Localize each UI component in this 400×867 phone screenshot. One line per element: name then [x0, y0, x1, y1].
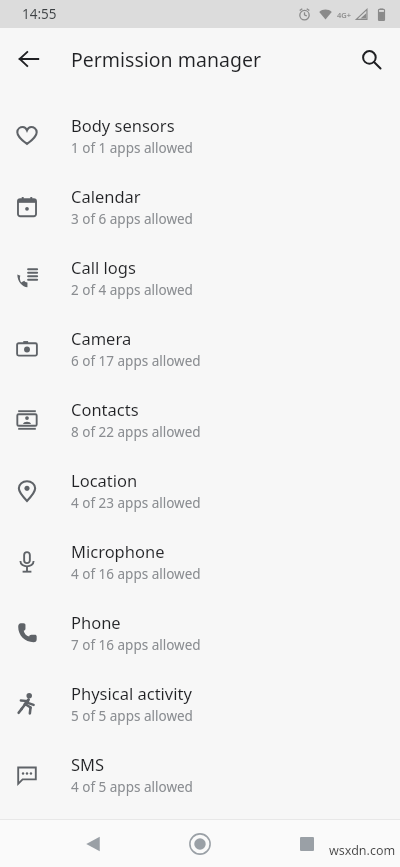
- staticText: Microphone: [71, 540, 165, 562]
- button[interactable]: Body sensors: [0, 100, 400, 171]
- staticText: 6 of 17 apps allowed: [71, 352, 201, 370]
- staticText: Call logs: [71, 256, 136, 278]
- staticText: Location: [71, 469, 138, 491]
- button[interactable]: Call logs: [0, 242, 400, 313]
- staticText: SMS: [71, 753, 105, 775]
- button[interactable]: Contacts: [0, 384, 400, 455]
- staticText: Physical activity: [71, 682, 192, 704]
- staticText: 1 of 1 apps allowed: [71, 139, 193, 157]
- button[interactable]: Physical activity: [0, 668, 400, 739]
- staticText: 4 of 16 apps allowed: [71, 565, 201, 583]
- button[interactable]: Calendar: [0, 171, 400, 242]
- staticText: Contacts: [71, 398, 139, 420]
- staticText: wsxdn.com: [329, 842, 396, 859]
- staticText: Body sensors: [71, 114, 175, 136]
- staticText: 4 of 5 apps allowed: [71, 778, 193, 796]
- staticText: 4G+: [337, 10, 352, 20]
- staticText: 4 of 23 apps allowed: [71, 494, 201, 512]
- button[interactable]: SMS: [0, 739, 400, 810]
- button[interactable]: Back: [9, 39, 49, 79]
- button[interactable]: Search: [349, 37, 393, 81]
- button[interactable]: Phone: [0, 597, 400, 668]
- button[interactable]: Camera: [0, 313, 400, 384]
- button[interactable]: Back: [73, 824, 113, 864]
- staticText: 3 of 6 apps allowed: [71, 210, 193, 228]
- staticText: Phone: [71, 611, 121, 633]
- staticText: 8 of 22 apps allowed: [71, 423, 201, 441]
- button[interactable]: Home: [180, 824, 220, 864]
- button[interactable]: Location: [0, 455, 400, 526]
- staticText: 5 of 5 apps allowed: [71, 707, 193, 725]
- staticText: Camera: [71, 327, 132, 349]
- staticText: Calendar: [71, 185, 141, 207]
- staticText: 14:55: [22, 5, 57, 23]
- staticText: Permission manager: [71, 46, 261, 73]
- staticText: 2 of 4 apps allowed: [71, 281, 193, 299]
- staticText: 7 of 16 apps allowed: [71, 636, 201, 654]
- button[interactable]: Recent apps: [287, 824, 327, 864]
- button[interactable]: Microphone: [0, 526, 400, 597]
